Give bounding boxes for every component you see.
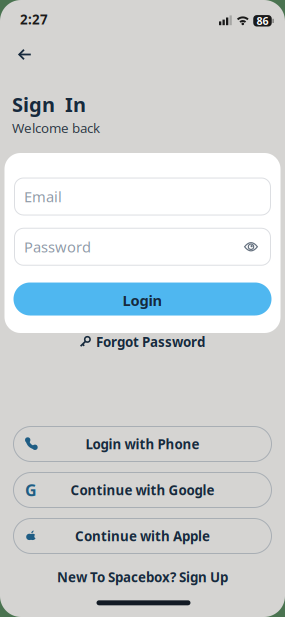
button[interactable]: Forgot Password bbox=[78, 333, 205, 351]
staticText: Continue with Google bbox=[70, 481, 214, 499]
staticText: Password bbox=[24, 237, 91, 256]
button[interactable]: Back bbox=[13, 42, 37, 66]
staticText: New To Spacebox? Sign Up bbox=[57, 568, 228, 586]
staticText: G bbox=[25, 479, 37, 501]
staticText: Sign In bbox=[12, 91, 86, 118]
button[interactable]: Continue with Google bbox=[13, 472, 272, 508]
button[interactable]: Continue with Apple bbox=[13, 518, 272, 554]
button[interactable]: New To Spacebox? Sign Up bbox=[57, 568, 228, 586]
button[interactable]: Password bbox=[14, 228, 271, 266]
staticText: Welcome back bbox=[12, 119, 100, 137]
staticText: Login with Phone bbox=[85, 435, 199, 453]
staticText: Login bbox=[122, 290, 162, 310]
staticText: Continue with Apple bbox=[75, 527, 210, 545]
staticText: 86 bbox=[256, 14, 268, 28]
button[interactable]: Login bbox=[13, 282, 271, 315]
staticText: 2:27 bbox=[20, 10, 48, 28]
button[interactable]: Email bbox=[14, 177, 271, 215]
button[interactable]: Login with Phone bbox=[13, 426, 272, 462]
staticText: Forgot Password bbox=[96, 333, 205, 351]
staticText: Email bbox=[24, 187, 62, 206]
